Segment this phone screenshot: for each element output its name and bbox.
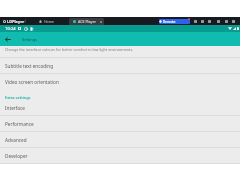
staticText: LDPlayer: [7, 19, 25, 24]
button[interactable]: Subtitle text encoding: [0, 58, 240, 73]
button[interactable]: Extensions: [193, 19, 198, 24]
staticText: Settings: [22, 37, 38, 42]
button[interactable]: Remote LDPlayer: [159, 19, 190, 24]
button[interactable]: ACE Player: [69, 18, 104, 25]
button[interactable]: Video screen orientation: [0, 74, 240, 89]
button[interactable]: Developer: [0, 148, 240, 163]
staticText: Video screen orientation: [5, 79, 59, 85]
staticText: 10:24: [5, 26, 16, 32]
staticText: Change the interface colours for better …: [5, 47, 134, 52]
button[interactable]: More: [207, 19, 212, 24]
staticText: Performance: [5, 121, 34, 127]
button[interactable]: Minimise: [216, 19, 221, 24]
staticText: Interface: [5, 105, 25, 111]
button[interactable]: Home: [39, 19, 54, 24]
staticText: Developer: [5, 153, 28, 159]
button[interactable]: Interface: [0, 100, 240, 115]
button[interactable]: Maximise: [224, 19, 229, 24]
staticText: Subtitle text encoding: [5, 63, 54, 69]
button[interactable]: Advanced: [0, 132, 240, 147]
button[interactable]: Performance: [0, 116, 240, 131]
button[interactable]: Close: [231, 19, 236, 24]
button[interactable]: Settings: [200, 19, 205, 24]
staticText: Remote LDPlayer: [163, 19, 190, 24]
staticText: Advanced: [5, 137, 27, 143]
staticText: Home: [44, 19, 54, 24]
staticText: ACE Player: [78, 19, 96, 24]
staticText: Extra settings: [5, 95, 31, 100]
button[interactable]: Back: [2, 33, 14, 45]
